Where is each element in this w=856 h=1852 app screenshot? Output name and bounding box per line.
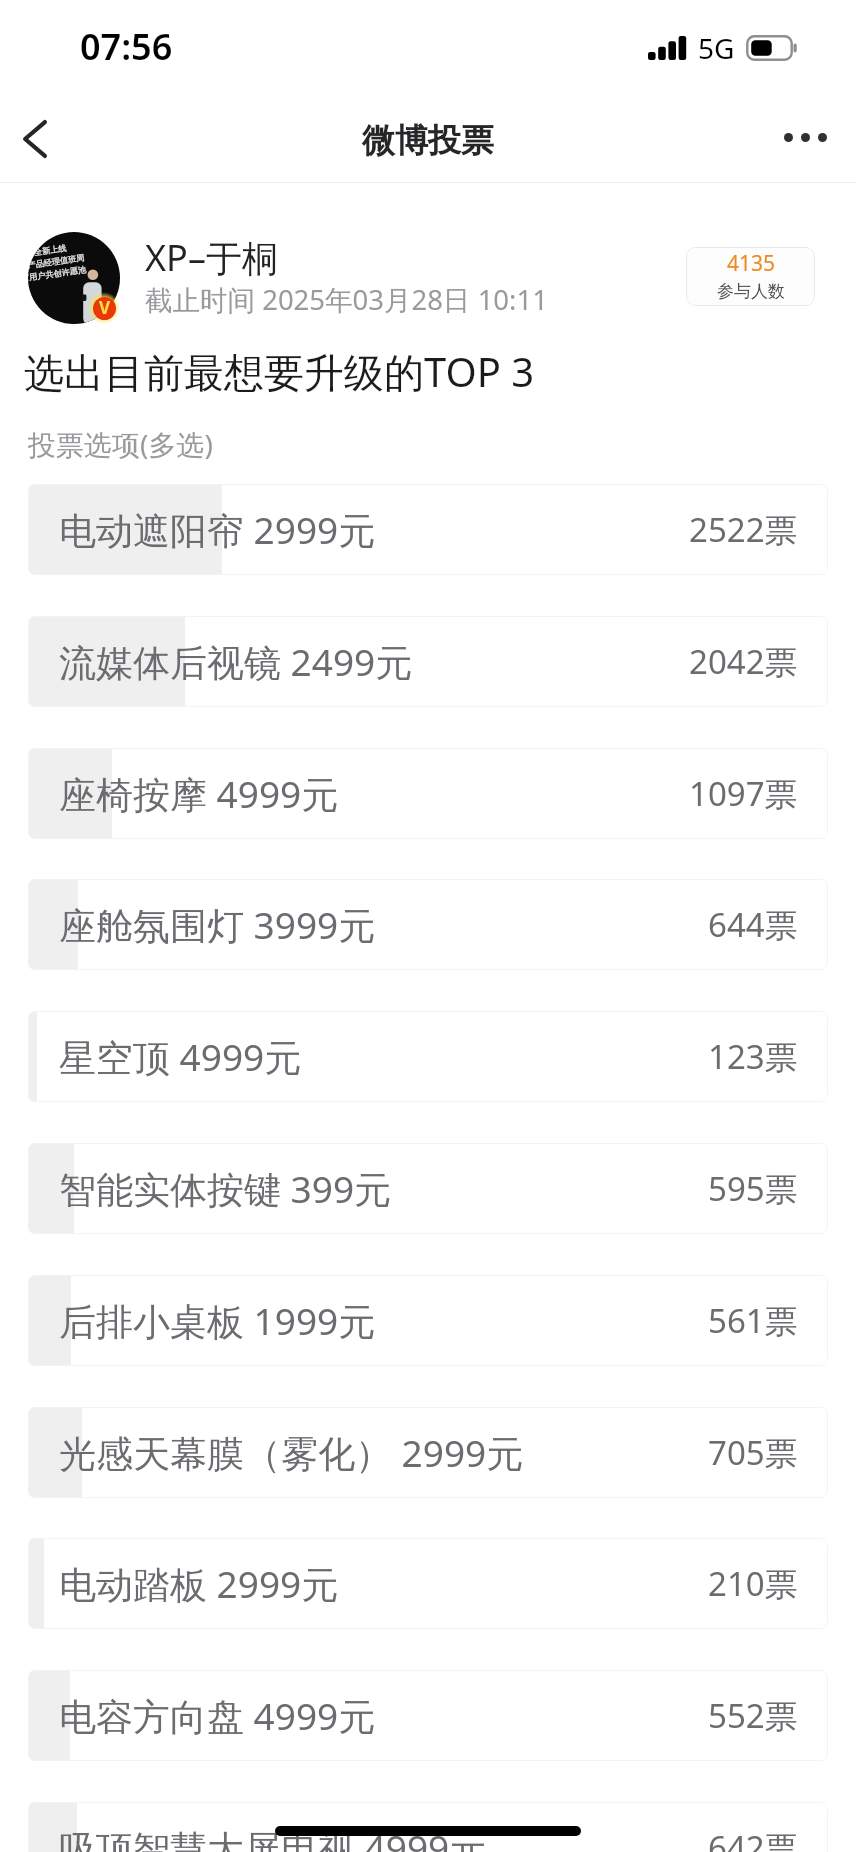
staticText: 光感天幕膜（雾化） 2999元 — [59, 1427, 524, 1478]
staticText: 流媒体后视镜 2499元 — [59, 636, 413, 687]
staticText: V — [99, 297, 111, 319]
button[interactable]: 吸顶智慧大屏电视 4999元 — [28, 1802, 828, 1852]
staticText: 4135 — [727, 249, 776, 278]
staticText: 投票选项(多选) — [28, 425, 213, 463]
staticText: 频道全新上线 — [28, 243, 68, 260]
button[interactable]: 光感天幕膜（雾化） 2999元 — [28, 1407, 828, 1498]
staticText: 选出目前最想要升级的TOP 3 — [24, 344, 535, 399]
staticText: 552票 — [708, 1693, 798, 1738]
staticText: 电动踏板 2999元 — [59, 1558, 339, 1609]
button[interactable]: 星空顶 4999元 — [28, 1011, 828, 1102]
button[interactable]: 更多 — [768, 100, 842, 183]
staticText: 595票 — [708, 1166, 798, 1211]
staticText: 644票 — [708, 902, 798, 947]
staticText: 智能实体按键 399元 — [59, 1163, 392, 1214]
staticText: XP–于桐 — [145, 233, 278, 282]
button[interactable]: 电容方向盘 4999元 — [28, 1670, 828, 1761]
staticText: 有用户共创许愿池 — [28, 264, 87, 283]
button[interactable]: 座椅按摩 4999元 — [28, 748, 828, 839]
staticText: 座舱氛围灯 3999元 — [59, 899, 376, 950]
staticText: 新产品经理值班周 — [28, 252, 85, 272]
button[interactable]: 电动踏板 2999元 — [28, 1538, 828, 1629]
button[interactable]: 后排小桌板 1999元 — [28, 1275, 828, 1366]
staticText: 07:56 — [80, 22, 173, 71]
staticText: 星空顶 4999元 — [59, 1031, 302, 1082]
staticText: 123票 — [708, 1034, 798, 1079]
staticText: 截止时间 2025年03月28日 10:11 — [145, 281, 548, 319]
staticText: 210票 — [708, 1561, 798, 1606]
staticText: 561票 — [708, 1298, 798, 1343]
button[interactable]: 流媒体后视镜 2499元 — [28, 616, 828, 707]
button[interactable]: 返回 — [0, 97, 70, 180]
staticText: 1097票 — [689, 771, 798, 816]
button[interactable]: 座舱氛围灯 3999元 — [28, 879, 828, 970]
staticText: 705票 — [708, 1430, 798, 1475]
staticText: 参与人数 — [717, 281, 785, 302]
staticText: 电容方向盘 4999元 — [59, 1690, 376, 1741]
button[interactable]: 智能实体按键 399元 — [28, 1143, 828, 1234]
staticText: 2042票 — [689, 639, 798, 684]
staticText: 电动遮阳帘 2999元 — [59, 504, 376, 555]
staticText: 座椅按摩 4999元 — [59, 768, 339, 819]
button[interactable]: 电动遮阳帘 2999元 — [28, 484, 828, 575]
button[interactable]: 4135 — [686, 247, 815, 306]
staticText: 2522票 — [689, 507, 798, 552]
staticText: 642票 — [708, 1825, 798, 1852]
staticText: 微博投票 — [362, 120, 494, 162]
staticText: 吸顶智慧大屏电视 4999元 — [59, 1822, 487, 1852]
staticText: 后排小桌板 1999元 — [59, 1295, 376, 1346]
staticText: 5G — [698, 29, 735, 67]
